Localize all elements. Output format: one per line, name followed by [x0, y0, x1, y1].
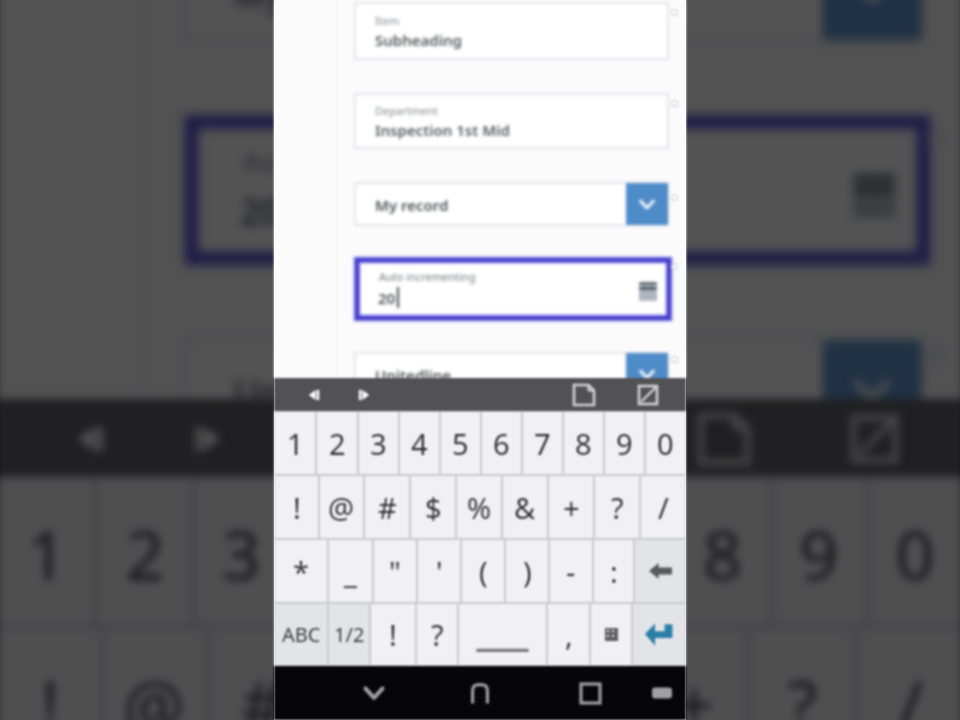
- staticText: 7: [607, 507, 647, 598]
- staticText: 9: [616, 424, 633, 463]
- button[interactable]: Open dropdown: [187, 340, 921, 439]
- staticText: /: [898, 657, 924, 720]
- button[interactable]: (: [462, 540, 504, 602]
- button[interactable]: 5: [388, 479, 480, 624]
- button[interactable]: %: [426, 629, 529, 720]
- button[interactable]: ": [374, 540, 416, 602]
- button[interactable]: Open dropdown: [355, 183, 668, 225]
- button[interactable]: Cursor left: [294, 378, 330, 411]
- staticText: @: [123, 657, 187, 720]
- staticText: 1/2: [334, 621, 365, 648]
- button[interactable]: !: [371, 604, 415, 665]
- button[interactable]: Cursor right: [348, 378, 384, 411]
- button[interactable]: ': [418, 540, 460, 602]
- button[interactable]: 7: [581, 479, 672, 624]
- button[interactable]: &: [503, 476, 547, 538]
- staticText: Unitedline: [234, 368, 414, 415]
- button[interactable]: $: [411, 476, 455, 538]
- button[interactable]: 0: [646, 412, 685, 474]
- button[interactable]: Open dropdown: [187, 0, 921, 40]
- button[interactable]: Cursor right: [170, 399, 255, 476]
- button[interactable]: :: [594, 540, 633, 602]
- button[interactable]: @: [104, 629, 205, 720]
- button[interactable]: [591, 604, 631, 665]
- button[interactable]: Edit: [832, 399, 917, 476]
- button[interactable]: Recent apps: [568, 666, 612, 720]
- button[interactable]: 4: [292, 479, 384, 624]
- staticText: &: [514, 488, 536, 527]
- staticText: ,: [565, 615, 573, 654]
- button[interactable]: Open dropdown: [355, 353, 668, 395]
- button[interactable]: [635, 540, 685, 602]
- button[interactable]: ): [506, 540, 548, 602]
- staticText: $: [425, 488, 442, 527]
- button[interactable]: #: [365, 476, 409, 538]
- button[interactable]: Auto incrementing: [191, 122, 924, 258]
- button[interactable]: 0: [870, 479, 960, 624]
- staticText: 8: [575, 424, 592, 463]
- button[interactable]: [459, 604, 546, 665]
- button[interactable]: 3: [196, 479, 287, 624]
- button[interactable]: 6: [482, 412, 521, 474]
- button[interactable]: -: [550, 540, 592, 602]
- button[interactable]: Auto incrementing: [357, 260, 669, 318]
- button[interactable]: Department: [355, 94, 668, 148]
- staticText: %: [449, 657, 508, 720]
- button[interactable]: 7: [523, 412, 562, 474]
- button[interactable]: ,: [548, 604, 589, 665]
- button[interactable]: ?: [595, 476, 639, 538]
- button[interactable]: Switch keyboard: [640, 666, 684, 720]
- button[interactable]: 8: [677, 479, 769, 624]
- staticText: !: [41, 657, 60, 720]
- staticText: ): [523, 552, 532, 591]
- button[interactable]: #: [210, 629, 313, 720]
- button[interactable]: *: [275, 540, 327, 602]
- staticText: -: [566, 552, 576, 591]
- button[interactable]: 6: [485, 479, 576, 624]
- button[interactable]: 3: [359, 412, 398, 474]
- staticText: !: [389, 615, 397, 654]
- button[interactable]: 1: [275, 412, 315, 474]
- button[interactable]: 4: [400, 412, 439, 474]
- button[interactable]: Cursor left: [43, 399, 128, 476]
- button[interactable]: 1/2: [329, 604, 369, 665]
- staticText: ': [436, 552, 443, 591]
- button[interactable]: [633, 604, 685, 665]
- staticText: ?: [431, 615, 444, 654]
- button[interactable]: Hide keyboard: [352, 666, 396, 720]
- button[interactable]: Clipboard: [682, 399, 766, 476]
- button[interactable]: &: [534, 629, 637, 720]
- button[interactable]: 9: [773, 479, 865, 624]
- button[interactable]: /: [641, 476, 685, 538]
- button[interactable]: Home: [458, 666, 502, 720]
- staticText: 0: [657, 424, 674, 463]
- button[interactable]: Item: [355, 3, 668, 59]
- button[interactable]: /: [858, 629, 960, 720]
- button[interactable]: !: [0, 629, 100, 720]
- button[interactable]: Clipboard: [566, 378, 602, 411]
- staticText: My record: [375, 195, 449, 215]
- button[interactable]: %: [457, 476, 501, 538]
- button[interactable]: +: [642, 629, 745, 720]
- button[interactable]: Edit: [630, 378, 666, 411]
- button[interactable]: 5: [441, 412, 480, 474]
- button[interactable]: 1: [0, 479, 93, 624]
- button[interactable]: @: [320, 476, 363, 538]
- button[interactable]: +: [549, 476, 593, 538]
- button[interactable]: !: [275, 476, 318, 538]
- staticText: 4: [318, 507, 358, 598]
- button[interactable]: ABC: [275, 604, 327, 665]
- staticText: 5: [414, 507, 454, 598]
- button[interactable]: ?: [750, 629, 853, 720]
- button[interactable]: $: [318, 629, 421, 720]
- staticText: :: [610, 552, 618, 591]
- staticText: ?: [611, 488, 624, 527]
- button[interactable]: 8: [564, 412, 603, 474]
- button[interactable]: ?: [417, 604, 457, 665]
- staticText: @: [328, 488, 355, 527]
- button[interactable]: 9: [605, 412, 644, 474]
- button[interactable]: 2: [317, 412, 357, 474]
- staticText: Unitedline: [375, 365, 452, 385]
- button[interactable]: 2: [97, 479, 191, 624]
- button[interactable]: _: [329, 540, 372, 602]
